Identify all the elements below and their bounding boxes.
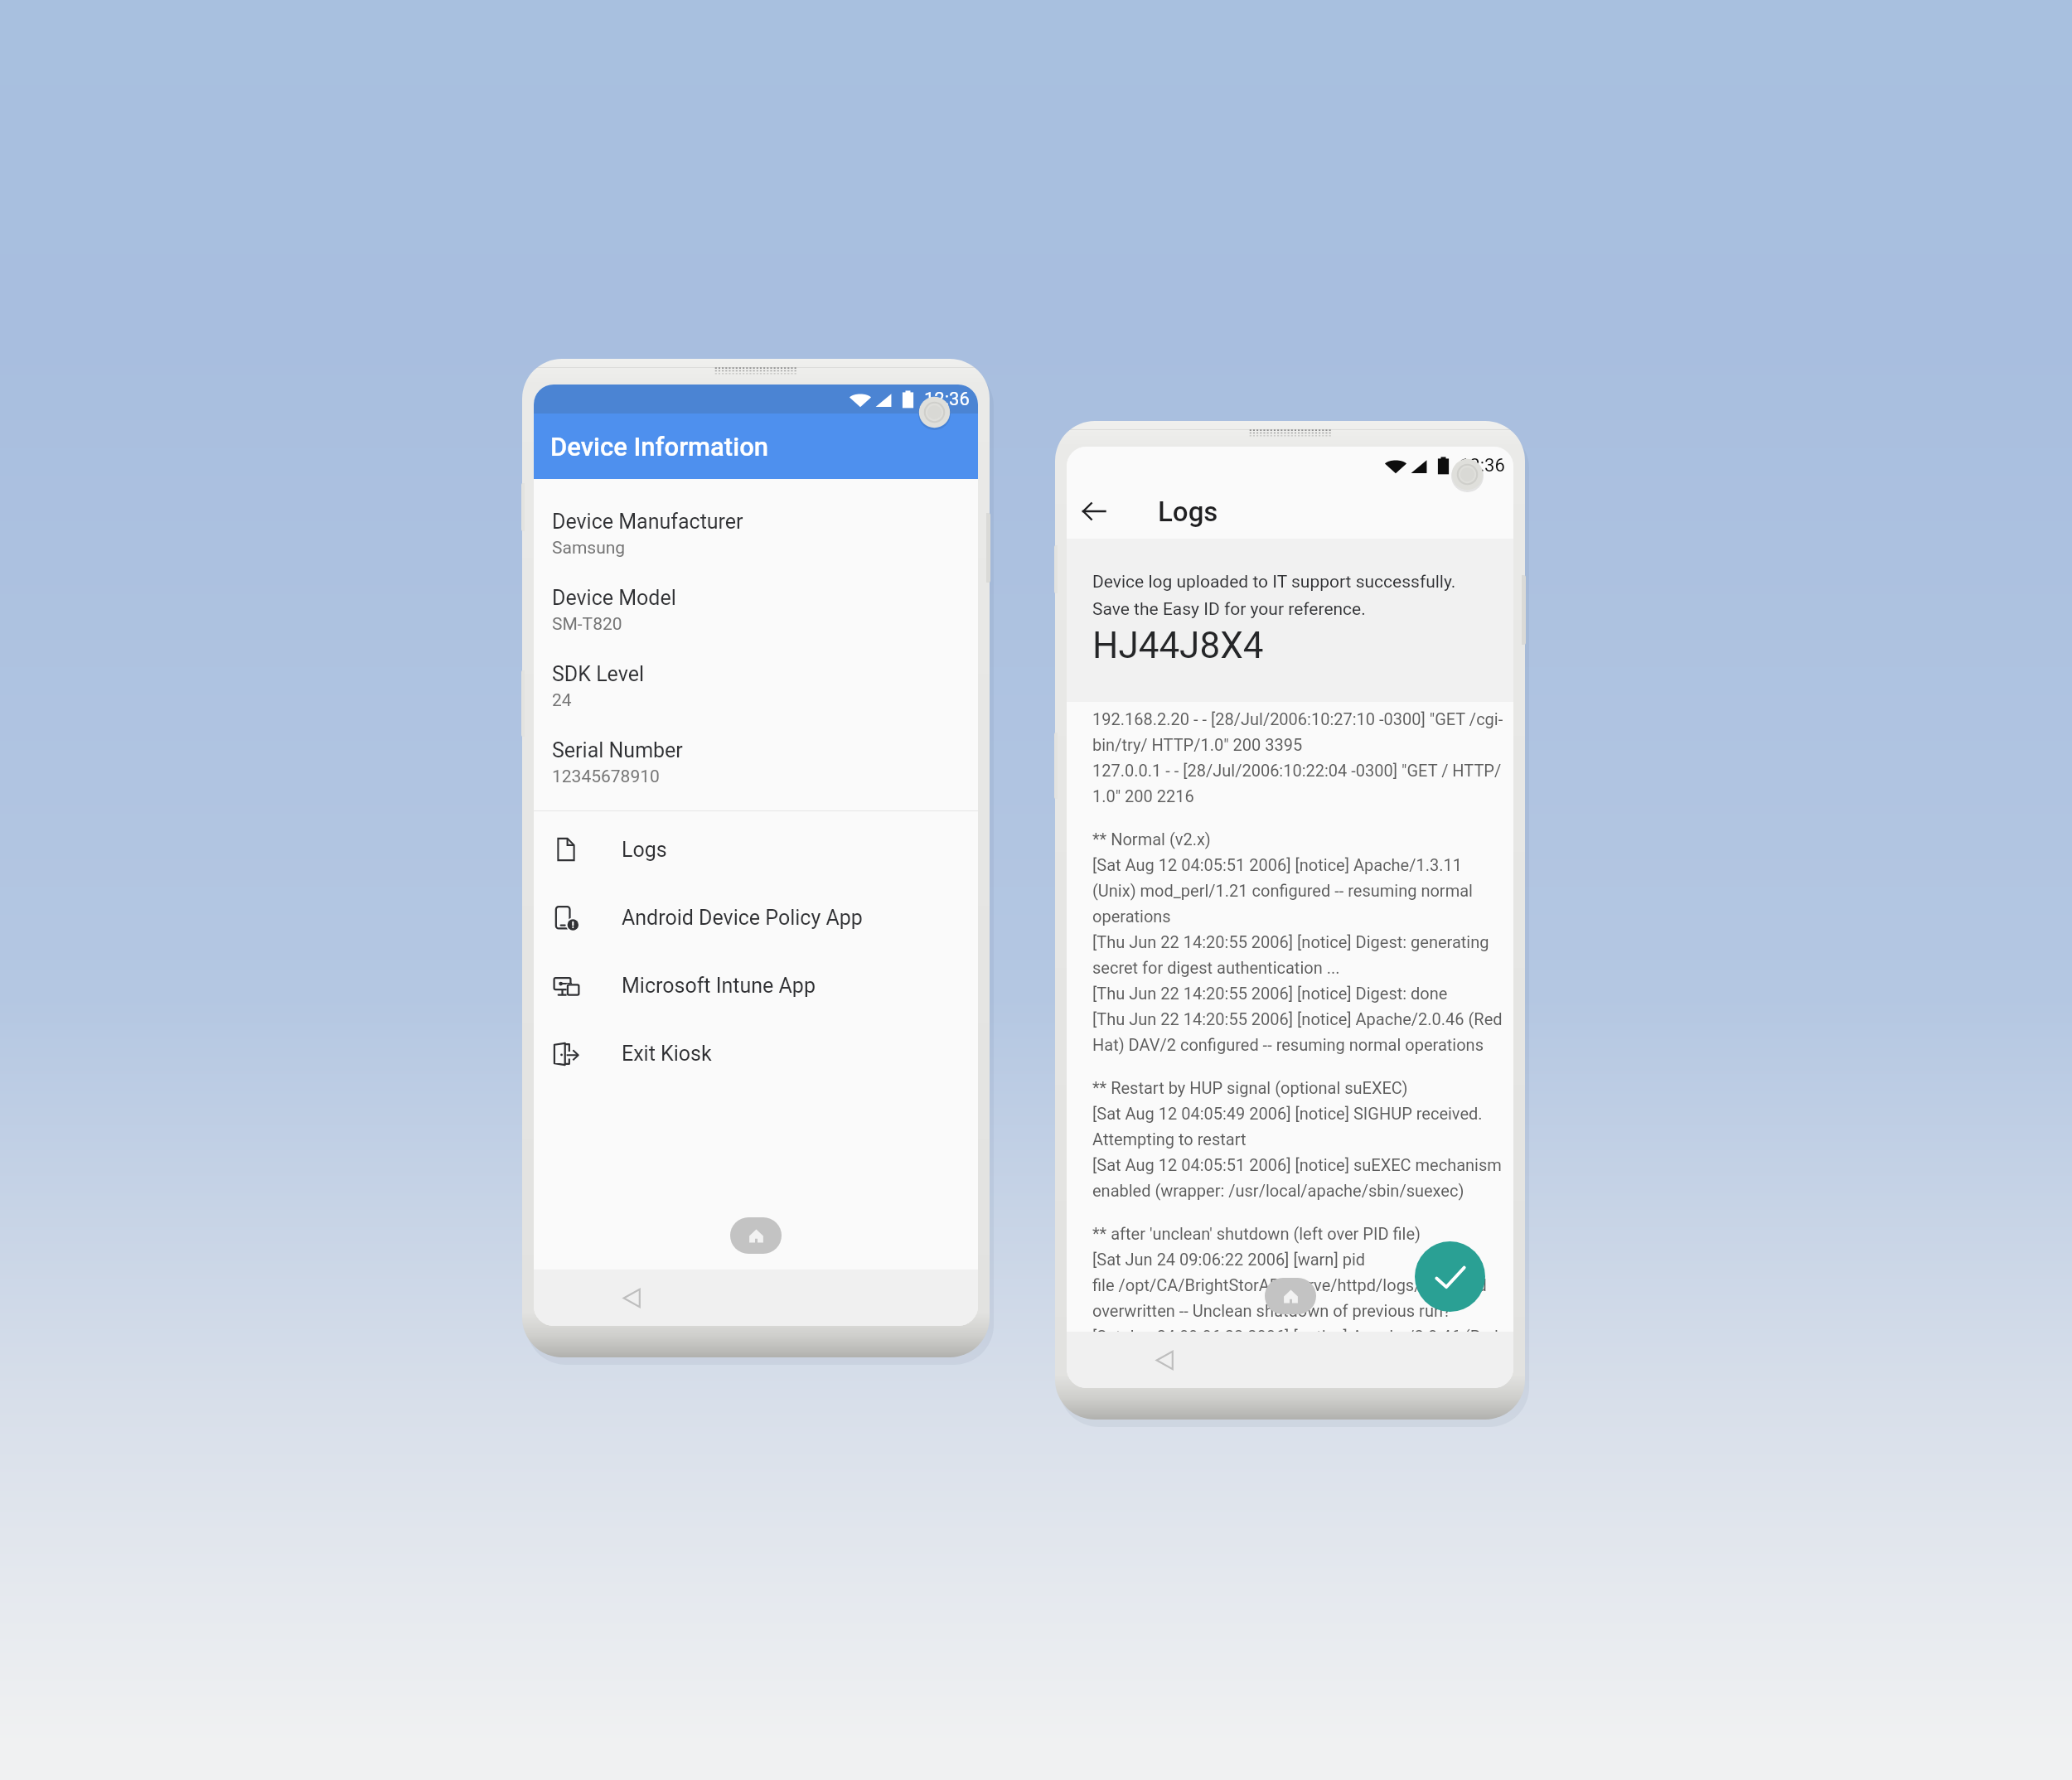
button[interactable]: Home — [730, 1217, 782, 1254]
button[interactable]: Microsoft Intune App — [534, 951, 978, 1019]
staticText: 12:36 — [1460, 455, 1505, 476]
staticText: SM-T820 — [552, 614, 622, 635]
staticText: ** Restart by HUP signal (optional suEXE… — [1092, 1078, 1504, 1200]
staticText: Serial Number — [552, 738, 683, 762]
button[interactable]: Back — [1067, 484, 1121, 539]
staticText: Samsung — [552, 538, 626, 559]
button[interactable]: Device Manufacturer — [534, 510, 978, 559]
button[interactable]: Exit Kiosk — [534, 1019, 978, 1087]
staticText: Device Model — [552, 586, 676, 610]
staticText: Device Information — [550, 432, 769, 462]
staticText: Logs — [1158, 496, 1218, 528]
staticText: Android Device Policy App — [622, 906, 863, 930]
button[interactable]: Done — [1415, 1241, 1485, 1312]
staticText: 24 — [552, 690, 572, 711]
button[interactable]: Back — [1145, 1340, 1184, 1380]
staticText: 12345678910 — [552, 767, 660, 787]
staticText: HJ44J8X4 — [1092, 624, 1264, 667]
staticText: Save the Easy ID for your reference. — [1092, 599, 1366, 620]
staticText: Microsoft Intune App — [622, 974, 816, 998]
button[interactable]: SDK Level — [534, 662, 978, 711]
button[interactable]: Back — [612, 1278, 651, 1318]
staticText: SDK Level — [552, 662, 644, 686]
staticText: ** after 'unclean' shutdown (left over P… — [1092, 1224, 1504, 1332]
button[interactable]: Device Model — [534, 586, 978, 635]
staticText: Device log uploaded to IT support succes… — [1092, 572, 1456, 593]
button[interactable]: Logs — [534, 815, 978, 883]
button[interactable]: Serial Number — [534, 738, 978, 787]
staticText: 12:36 — [924, 389, 970, 410]
staticText: ** Normal (v2.x) [Sat Aug 12 04:05:51 20… — [1092, 830, 1504, 1054]
staticText: Exit Kiosk — [622, 1042, 712, 1066]
staticText: Logs — [622, 838, 667, 862]
button[interactable]: Home — [1265, 1278, 1316, 1314]
staticText: Device Manufacturer — [552, 510, 743, 534]
button[interactable]: Android Device Policy App — [534, 883, 978, 951]
staticText: 192.168.2.20 - - [28/Jul/2006:10:27:10 -… — [1092, 709, 1504, 805]
